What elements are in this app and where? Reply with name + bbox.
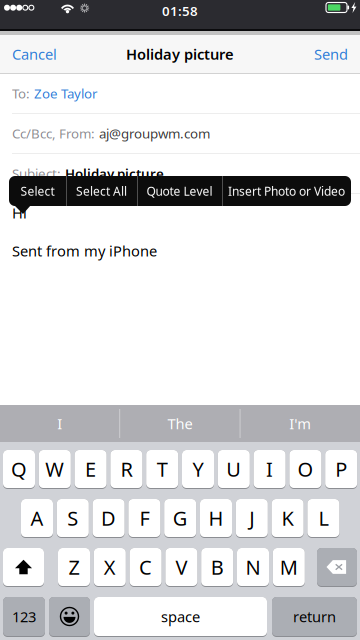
staticText: Holiday picture [65,164,164,182]
staticText: Select All [76,183,127,199]
button[interactable]: The [120,405,240,442]
staticText: I [266,456,273,482]
button[interactable]: G [164,499,196,538]
button[interactable]: Y [182,450,214,489]
staticText: M [280,554,298,580]
staticText: Hi [12,203,27,222]
staticText: space [161,607,200,626]
button[interactable]: J [236,499,268,538]
staticText: The [167,414,192,433]
staticText: H [208,505,223,531]
button[interactable]: M [273,548,305,587]
staticText: return [293,607,336,626]
button[interactable]: U [218,450,250,489]
button[interactable]: K [272,499,304,538]
staticText: F [139,505,149,531]
staticText: P [335,456,347,482]
staticText: Q [11,456,27,482]
staticText: Send [314,44,348,64]
button[interactable]: E [75,450,107,489]
staticText: D [101,505,116,531]
staticText: J [249,505,254,531]
button[interactable]: Emoji [49,597,90,637]
button[interactable]: W [39,450,71,489]
staticText: O [297,456,313,482]
button[interactable]: B [201,548,233,587]
button[interactable]: I'm [241,405,360,442]
button[interactable]: F [128,499,160,538]
staticText: Select [20,183,54,199]
staticText: E [85,456,96,482]
staticText: W [45,456,64,482]
button[interactable]: X [94,548,126,587]
staticText: Subject: [12,164,61,182]
staticText: V [175,554,187,580]
button[interactable]: N [237,548,269,587]
staticText: Y [192,456,203,482]
staticText: B [211,554,224,580]
button[interactable]: S [57,499,89,538]
button[interactable]: A [21,499,53,538]
button[interactable]: space [94,597,267,637]
staticText: Zoe Taylor [34,84,98,102]
staticText: Holiday picture [126,44,234,64]
staticText: Insert Photo or Video [228,183,345,199]
staticText: N [245,554,260,580]
staticText: X [104,554,116,580]
staticText: I [57,414,62,433]
staticText: aj@groupwm.com [99,124,210,142]
staticText: Cancel [12,44,57,64]
button[interactable]: return [272,597,357,637]
button[interactable]: R [110,450,142,489]
button[interactable]: C [130,548,162,587]
staticText: C [139,554,152,580]
staticText: S [67,505,78,531]
button[interactable]: Quote Level [137,176,222,206]
staticText: Cc/Bcc, From: [12,124,95,142]
button[interactable]: H [200,499,232,538]
staticText: Sent from my iPhone [12,241,157,260]
staticText: T [157,456,168,482]
button[interactable]: Delete [317,548,357,587]
button[interactable]: Send [302,35,360,73]
button[interactable]: V [165,548,197,587]
button[interactable]: Q [3,450,35,489]
staticText: Z [68,554,79,580]
staticText: A [30,505,43,531]
button[interactable]: I [0,405,119,442]
button[interactable]: Select All [66,176,137,206]
button[interactable]: 123 [3,597,45,637]
button[interactable]: Select [9,176,66,206]
button[interactable]: O [289,450,321,489]
staticText: L [318,505,328,531]
staticText: To: [12,84,30,102]
button[interactable]: L [307,499,339,538]
button[interactable]: T [146,450,178,489]
staticText: 01:58 [162,2,198,20]
staticText: Quote Level [146,183,212,199]
button[interactable]: Z [58,548,90,587]
button[interactable]: Shift [3,548,44,587]
button[interactable]: Insert Photo or Video [222,176,351,206]
button[interactable]: D [93,499,125,538]
staticText: U [226,456,241,482]
staticText: K [282,505,294,531]
button[interactable]: I [254,450,286,489]
button[interactable]: Cancel [0,35,69,73]
button[interactable]: P [325,450,357,489]
staticText: R [120,456,132,482]
staticText: I'm [289,414,311,433]
staticText: G [173,505,188,531]
staticText: 123 [12,607,36,626]
